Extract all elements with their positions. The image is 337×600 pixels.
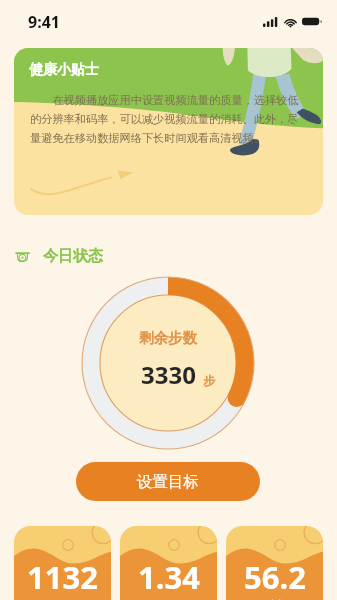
button[interactable]: 1132	[14, 526, 111, 600]
staticText: 健康小贴士	[29, 61, 99, 79]
staticText: 1132	[27, 556, 98, 598]
button[interactable]: 健康小贴士	[14, 48, 323, 215]
staticText: 步	[203, 373, 215, 388]
staticText: 在视频播放应用中设置视频流量的质量，选择较低的分辨率和码率，可以减少视频流量的消…	[30, 92, 307, 146]
other: Today status	[15, 249, 30, 264]
staticText: 56.2	[244, 556, 306, 598]
staticText: 今日状态	[43, 247, 103, 266]
button[interactable]: 设置目标	[76, 462, 260, 501]
staticText: 剩余步数	[139, 329, 197, 347]
staticText: 千卡	[264, 598, 286, 600]
button[interactable]: 1.34	[120, 526, 217, 600]
staticText: 9:41	[28, 11, 60, 33]
staticText: 设置目标	[137, 472, 199, 492]
staticText: 3330	[141, 358, 196, 391]
staticText: 1.34	[138, 556, 200, 598]
button[interactable]: 56.2	[226, 526, 323, 600]
